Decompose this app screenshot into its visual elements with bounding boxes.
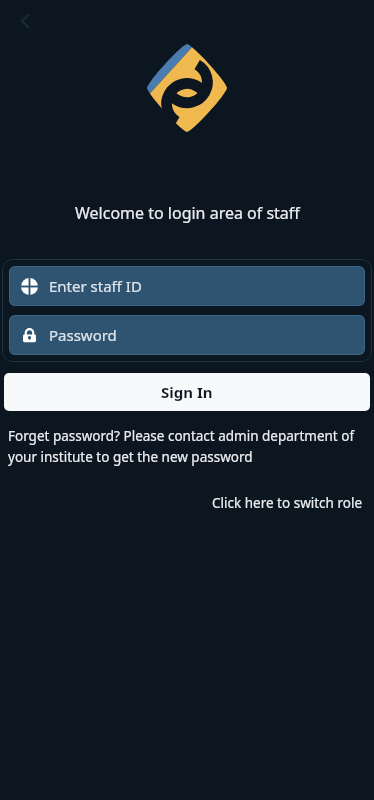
button[interactable]: Staff ID field [9,266,365,306]
staticText: Enter staff ID [49,276,142,296]
button[interactable]: Click here to switch role [200,490,374,516]
staticText: Welcome to login area of staff [75,202,300,224]
staticText: Sign In [161,382,213,402]
staticText: Click here to switch role [212,494,362,512]
button[interactable]: Sign In [4,373,370,411]
staticText: Password [49,325,117,345]
button[interactable]: Password field [9,315,365,355]
staticText: Forget password? Please contact admin de… [8,427,366,466]
button[interactable]: Back [6,2,44,40]
